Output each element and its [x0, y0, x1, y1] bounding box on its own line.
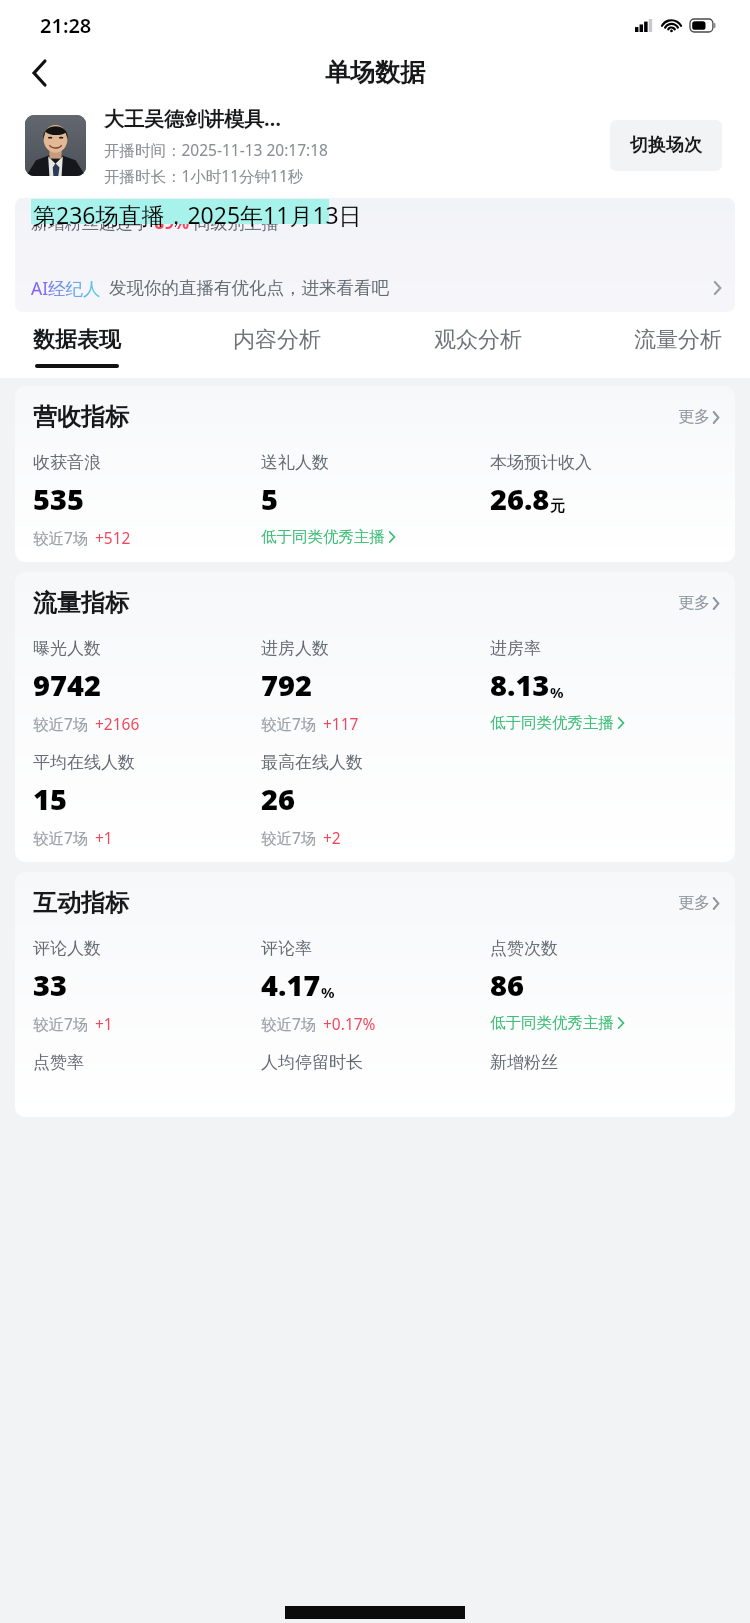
- staticText: 更多: [678, 407, 710, 427]
- staticText: 评论率: [261, 938, 312, 959]
- staticText: 观众分析: [434, 326, 522, 354]
- button[interactable]: Back: [18, 52, 60, 94]
- staticText: 点赞次数: [490, 938, 558, 959]
- staticText: 最高在线人数: [261, 752, 363, 773]
- staticText: 送礼人数: [261, 452, 329, 473]
- button[interactable]: 更多: [678, 593, 719, 613]
- staticText: 开播时长：1小时11分钟11秒: [104, 165, 304, 186]
- staticText: %: [550, 682, 564, 702]
- staticText: 8.13: [490, 665, 550, 704]
- staticText: +117: [323, 713, 359, 734]
- button[interactable]: 数据表现: [33, 326, 121, 368]
- staticText: 较近7场: [33, 1013, 89, 1034]
- staticText: 互动指标: [33, 888, 129, 918]
- staticText: +1: [95, 1013, 113, 1034]
- staticText: 较近7场: [33, 527, 89, 548]
- staticText: 流量分析: [634, 326, 722, 354]
- staticText: 元: [550, 497, 565, 516]
- staticText: 流量指标: [33, 588, 129, 618]
- button[interactable]: 流量分析: [634, 326, 722, 364]
- button[interactable]: 低于同类优秀主播: [490, 1013, 624, 1033]
- staticText: 更多: [678, 893, 710, 913]
- button[interactable]: 内容分析: [233, 326, 321, 364]
- staticText: 5: [261, 479, 278, 518]
- staticText: 低于同类优秀主播: [261, 527, 385, 547]
- staticText: 较近7场: [33, 827, 89, 848]
- staticText: 大王吴德剑讲模具…: [104, 105, 282, 132]
- staticText: 单场数据: [325, 57, 425, 88]
- staticText: 较近7场: [33, 713, 89, 734]
- staticText: 第236场直播，2025年11月13日: [33, 199, 362, 230]
- staticText: 低于同类优秀主播: [490, 713, 614, 733]
- button[interactable]: 观众分析: [434, 326, 522, 364]
- staticText: 较近7场: [261, 827, 317, 848]
- staticText: 人均停留时长: [261, 1052, 490, 1073]
- staticText: 新增粉丝: [490, 1052, 719, 1073]
- staticText: 数据表现: [33, 326, 121, 354]
- staticText: 曝光人数: [33, 638, 101, 659]
- staticText: 平均在线人数: [33, 752, 135, 773]
- button[interactable]: 低于同类优秀主播: [261, 527, 395, 547]
- staticText: 点赞率: [33, 1052, 261, 1073]
- staticText: 21:28: [40, 12, 92, 39]
- staticText: +1: [95, 827, 113, 848]
- staticText: 营收指标: [33, 402, 129, 432]
- staticText: +0.17%: [323, 1013, 376, 1034]
- button[interactable]: 更多: [678, 407, 719, 427]
- staticText: 4.17: [261, 965, 321, 1004]
- staticText: 收获音浪: [33, 452, 101, 473]
- staticText: 开播时间：2025-11-13 20:17:18: [104, 139, 328, 160]
- staticText: 26.8: [490, 479, 550, 518]
- staticText: 更多: [678, 593, 710, 613]
- staticText: 新增粉丝超过了 89% 同级别主播: [31, 211, 279, 234]
- staticText: +2: [323, 827, 341, 848]
- staticText: 发现你的直播有优化点，进来看看吧: [109, 277, 389, 299]
- staticText: 较近7场: [261, 1013, 317, 1034]
- staticText: 内容分析: [233, 326, 321, 354]
- staticText: +512: [95, 527, 131, 548]
- staticText: 9742: [33, 665, 101, 704]
- staticText: 86: [490, 965, 524, 1004]
- staticText: 评论人数: [33, 938, 101, 959]
- staticText: 792: [261, 665, 312, 704]
- button[interactable]: 切换场次: [610, 120, 722, 171]
- button[interactable]: 低于同类优秀主播: [490, 713, 624, 733]
- button[interactable]: AI经纪人: [31, 276, 721, 300]
- staticText: 进房率: [490, 638, 541, 659]
- staticText: 33: [33, 965, 67, 1004]
- staticText: %: [321, 982, 335, 1002]
- staticText: 进房人数: [261, 638, 329, 659]
- staticText: AI经纪人: [31, 276, 101, 300]
- staticText: +2166: [95, 713, 140, 734]
- staticText: 26: [261, 779, 295, 818]
- button[interactable]: 更多: [678, 893, 719, 913]
- staticText: 较近7场: [261, 713, 317, 734]
- staticText: 15: [33, 779, 67, 818]
- staticText: 切换场次: [630, 134, 702, 157]
- staticText: 535: [33, 479, 84, 518]
- staticText: 低于同类优秀主播: [490, 1013, 614, 1033]
- staticText: 本场预计收入: [490, 452, 592, 473]
